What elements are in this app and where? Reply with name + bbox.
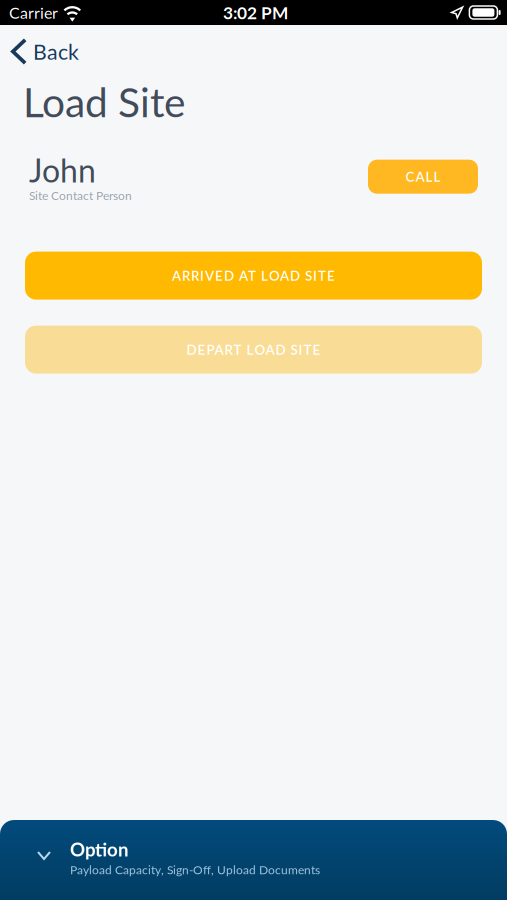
staticText: ARRIVED AT LOAD SITE (172, 268, 335, 284)
staticText: DEPART LOAD SITE (186, 342, 320, 358)
button[interactable]: DEPART LOAD SITE (25, 326, 482, 374)
staticText: Back (33, 39, 79, 64)
staticText: Carrier (9, 3, 58, 22)
button[interactable]: CALL (368, 160, 478, 194)
staticText: 3:02 PM (223, 2, 288, 23)
staticText: John (29, 151, 96, 189)
button[interactable]: ARRIVED AT LOAD SITE (25, 252, 482, 300)
button[interactable]: Back (0, 30, 91, 73)
staticText: Payload Capacity, Sign-Off, Upload Docum… (70, 862, 320, 877)
staticText: Load Site (23, 77, 185, 126)
staticText: CALL (405, 169, 440, 185)
staticText: Site Contact Person (29, 188, 132, 203)
button[interactable]: Option (0, 820, 507, 900)
staticText: Option (70, 838, 129, 860)
